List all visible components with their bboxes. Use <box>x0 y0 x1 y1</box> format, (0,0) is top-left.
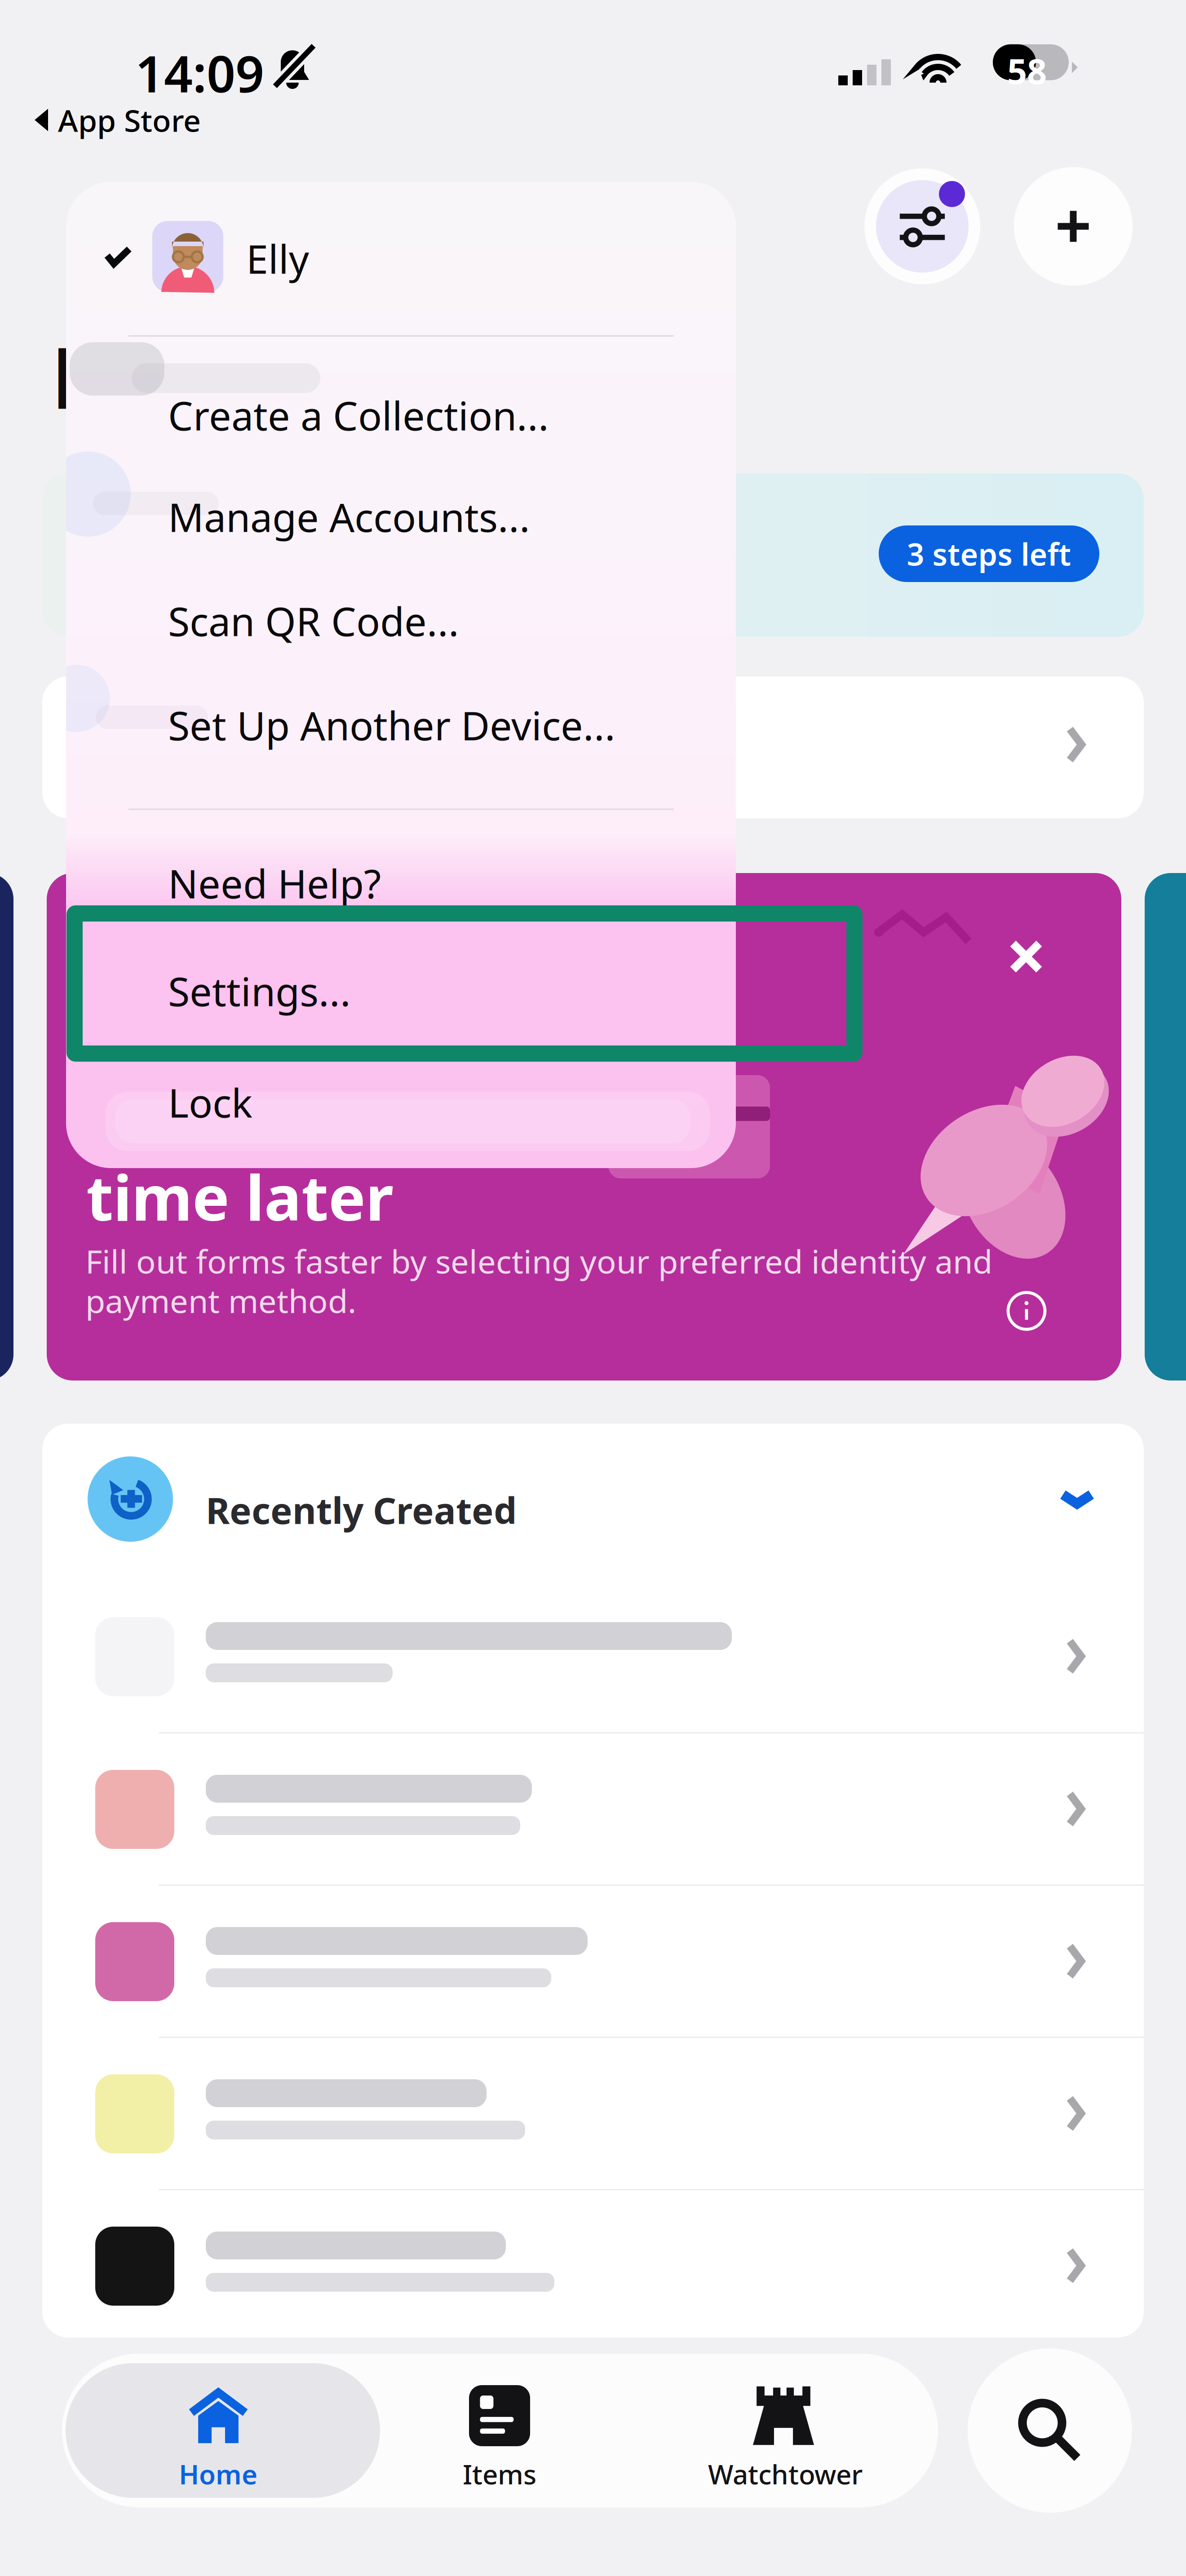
button[interactable] <box>42 1581 1144 1732</box>
button[interactable]: Lock <box>66 1045 736 1146</box>
button[interactable]: Need Help? <box>66 825 736 927</box>
staticText: Manage Accounts... <box>168 490 530 543</box>
button[interactable]: Recently Created <box>42 1424 1144 1581</box>
staticText: time later <box>86 1155 394 1238</box>
button[interactable]: Add new item <box>1014 167 1133 286</box>
staticText: 3 steps left <box>907 533 1071 574</box>
button[interactable]: Scan QR Code... <box>66 563 736 665</box>
button[interactable]: Set Up Another Device... <box>66 667 736 769</box>
button[interactable]: Create a Collection... <box>66 357 736 459</box>
button[interactable]: Settings... <box>66 933 736 1035</box>
staticText: payment method. <box>85 1279 356 1322</box>
button[interactable]: time later <box>47 873 1121 1381</box>
button[interactable] <box>42 2038 1144 2189</box>
button[interactable]: App Store <box>35 100 201 140</box>
staticText: Items <box>463 2456 536 2492</box>
staticText: Scan QR Code... <box>168 595 459 647</box>
staticText: Home <box>179 2456 257 2492</box>
staticText: Morning <box>51 319 412 432</box>
button[interactable]: Elly <box>66 182 736 333</box>
button[interactable]: Home <box>66 2354 380 2507</box>
button[interactable] <box>42 1734 1144 1885</box>
button[interactable]: Items <box>381 2354 633 2507</box>
staticText: 14:09 <box>135 40 264 106</box>
staticText: Recently Created <box>206 1486 517 1534</box>
staticText: Need Help? <box>168 857 381 909</box>
staticText: Lock <box>168 1076 252 1129</box>
button[interactable]: Watchtower <box>633 2354 938 2507</box>
button[interactable] <box>42 1886 1144 2037</box>
button[interactable]: Filter items <box>864 168 980 284</box>
button[interactable]: Manage Accounts... <box>66 459 736 560</box>
button[interactable]: 3 steps left <box>42 473 1144 637</box>
staticText: 58 <box>1007 47 1047 94</box>
staticText: Create a Collection... <box>168 389 549 441</box>
button[interactable] <box>42 676 1144 818</box>
staticText: Set Up Another Device... <box>168 699 615 751</box>
staticText: App Store <box>58 100 201 140</box>
button[interactable] <box>42 2190 1144 2342</box>
staticText: Watchtower <box>708 2456 863 2492</box>
staticText: Fill out forms faster by selecting your … <box>85 1239 992 1282</box>
button[interactable]: Search <box>968 2348 1132 2513</box>
staticText: Settings... <box>168 965 351 1017</box>
staticText: Elly <box>246 232 309 285</box>
